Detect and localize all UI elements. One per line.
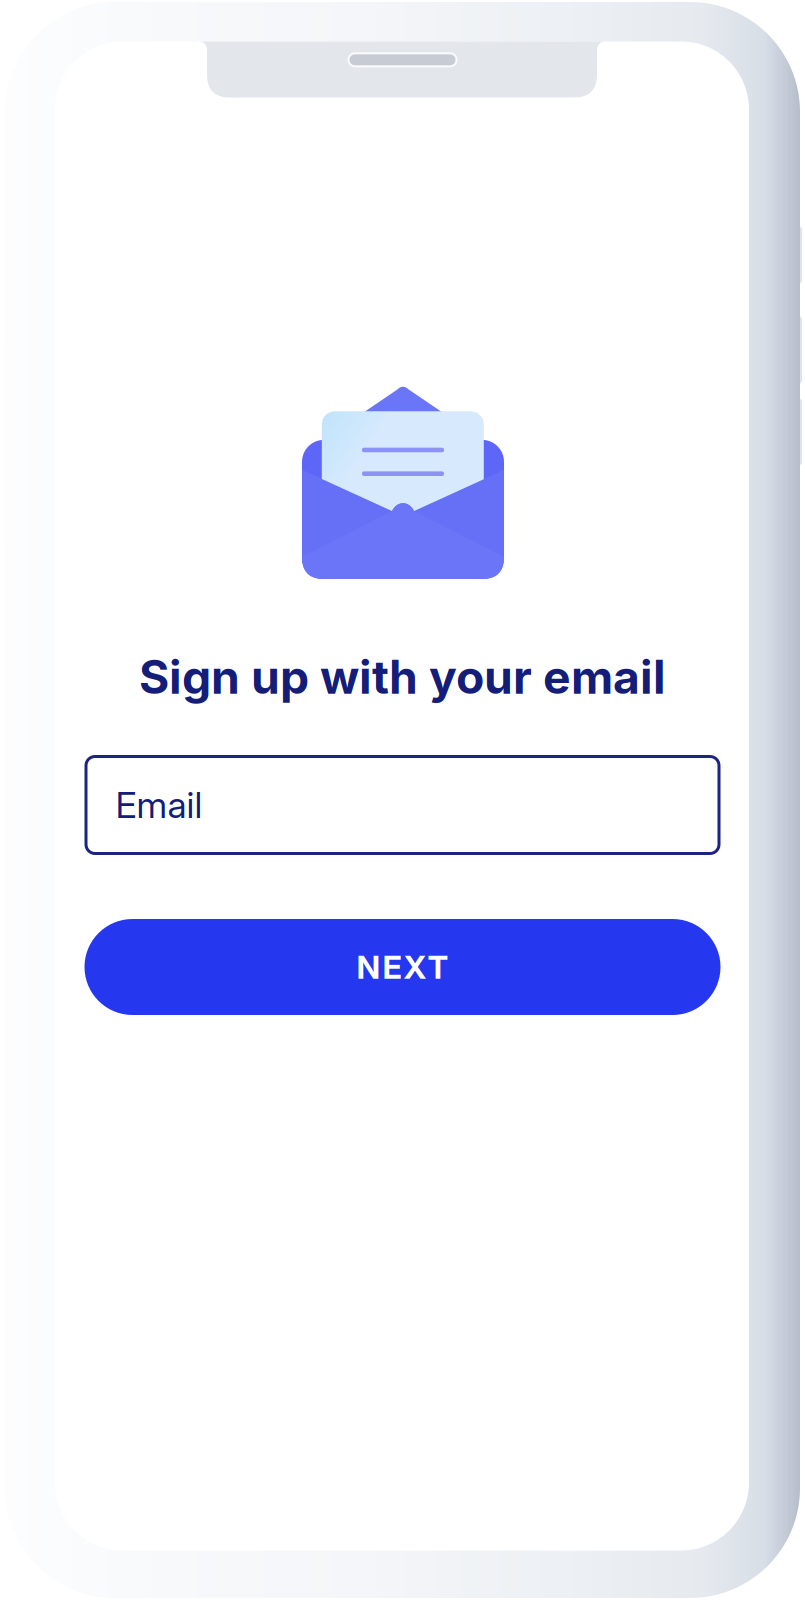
button[interactable]: NEXT bbox=[84, 919, 720, 1015]
staticText: Email bbox=[115, 783, 202, 827]
staticText: Sign up with your email bbox=[139, 649, 666, 705]
staticText: NEXT bbox=[356, 948, 448, 986]
button[interactable]: Email bbox=[84, 755, 720, 855]
